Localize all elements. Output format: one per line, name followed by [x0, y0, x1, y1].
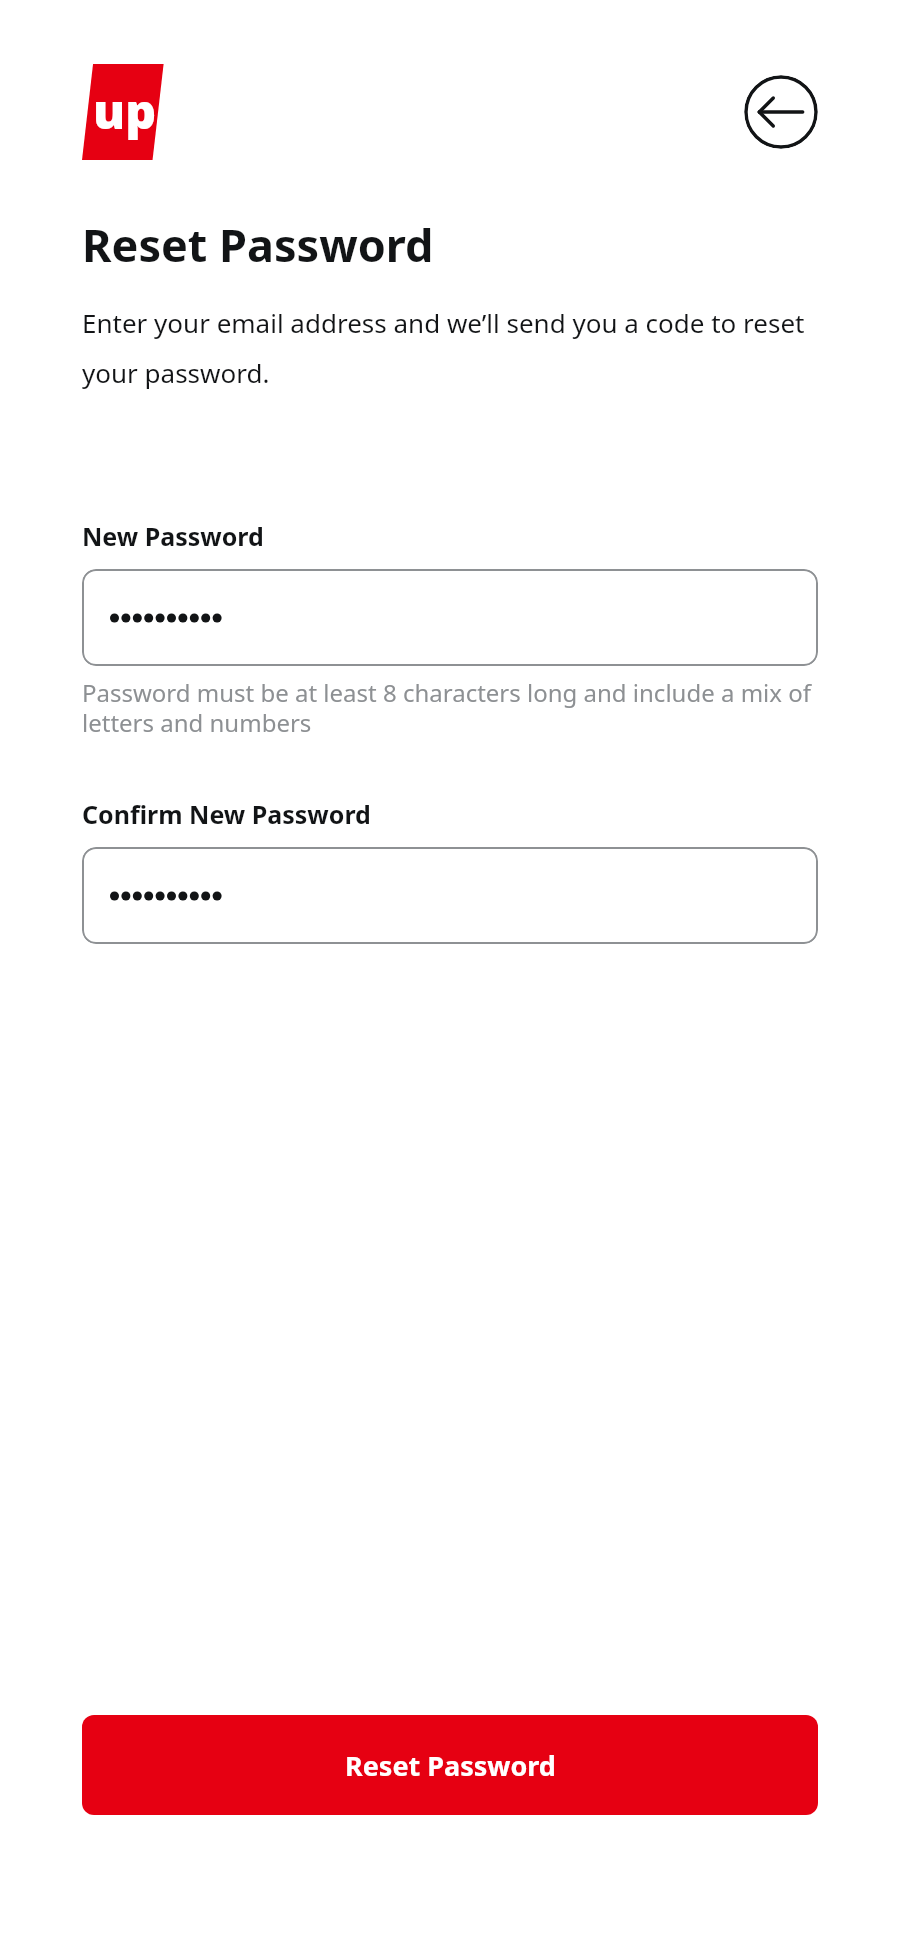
- button[interactable]: Reset Password: [82, 1715, 818, 1815]
- staticText: up: [93, 78, 157, 143]
- button[interactable]: Back: [744, 75, 818, 149]
- button[interactable]: [82, 847, 818, 944]
- staticText: New Password: [82, 519, 264, 553]
- button[interactable]: [82, 569, 818, 666]
- staticText: Password must be at least 8 characters l…: [82, 676, 818, 739]
- staticText: Reset Password: [82, 214, 434, 275]
- staticText: Confirm New Password: [82, 797, 371, 831]
- staticText: Reset Password: [345, 1747, 556, 1784]
- staticText: Enter your email address and we’ll send …: [82, 305, 818, 391]
